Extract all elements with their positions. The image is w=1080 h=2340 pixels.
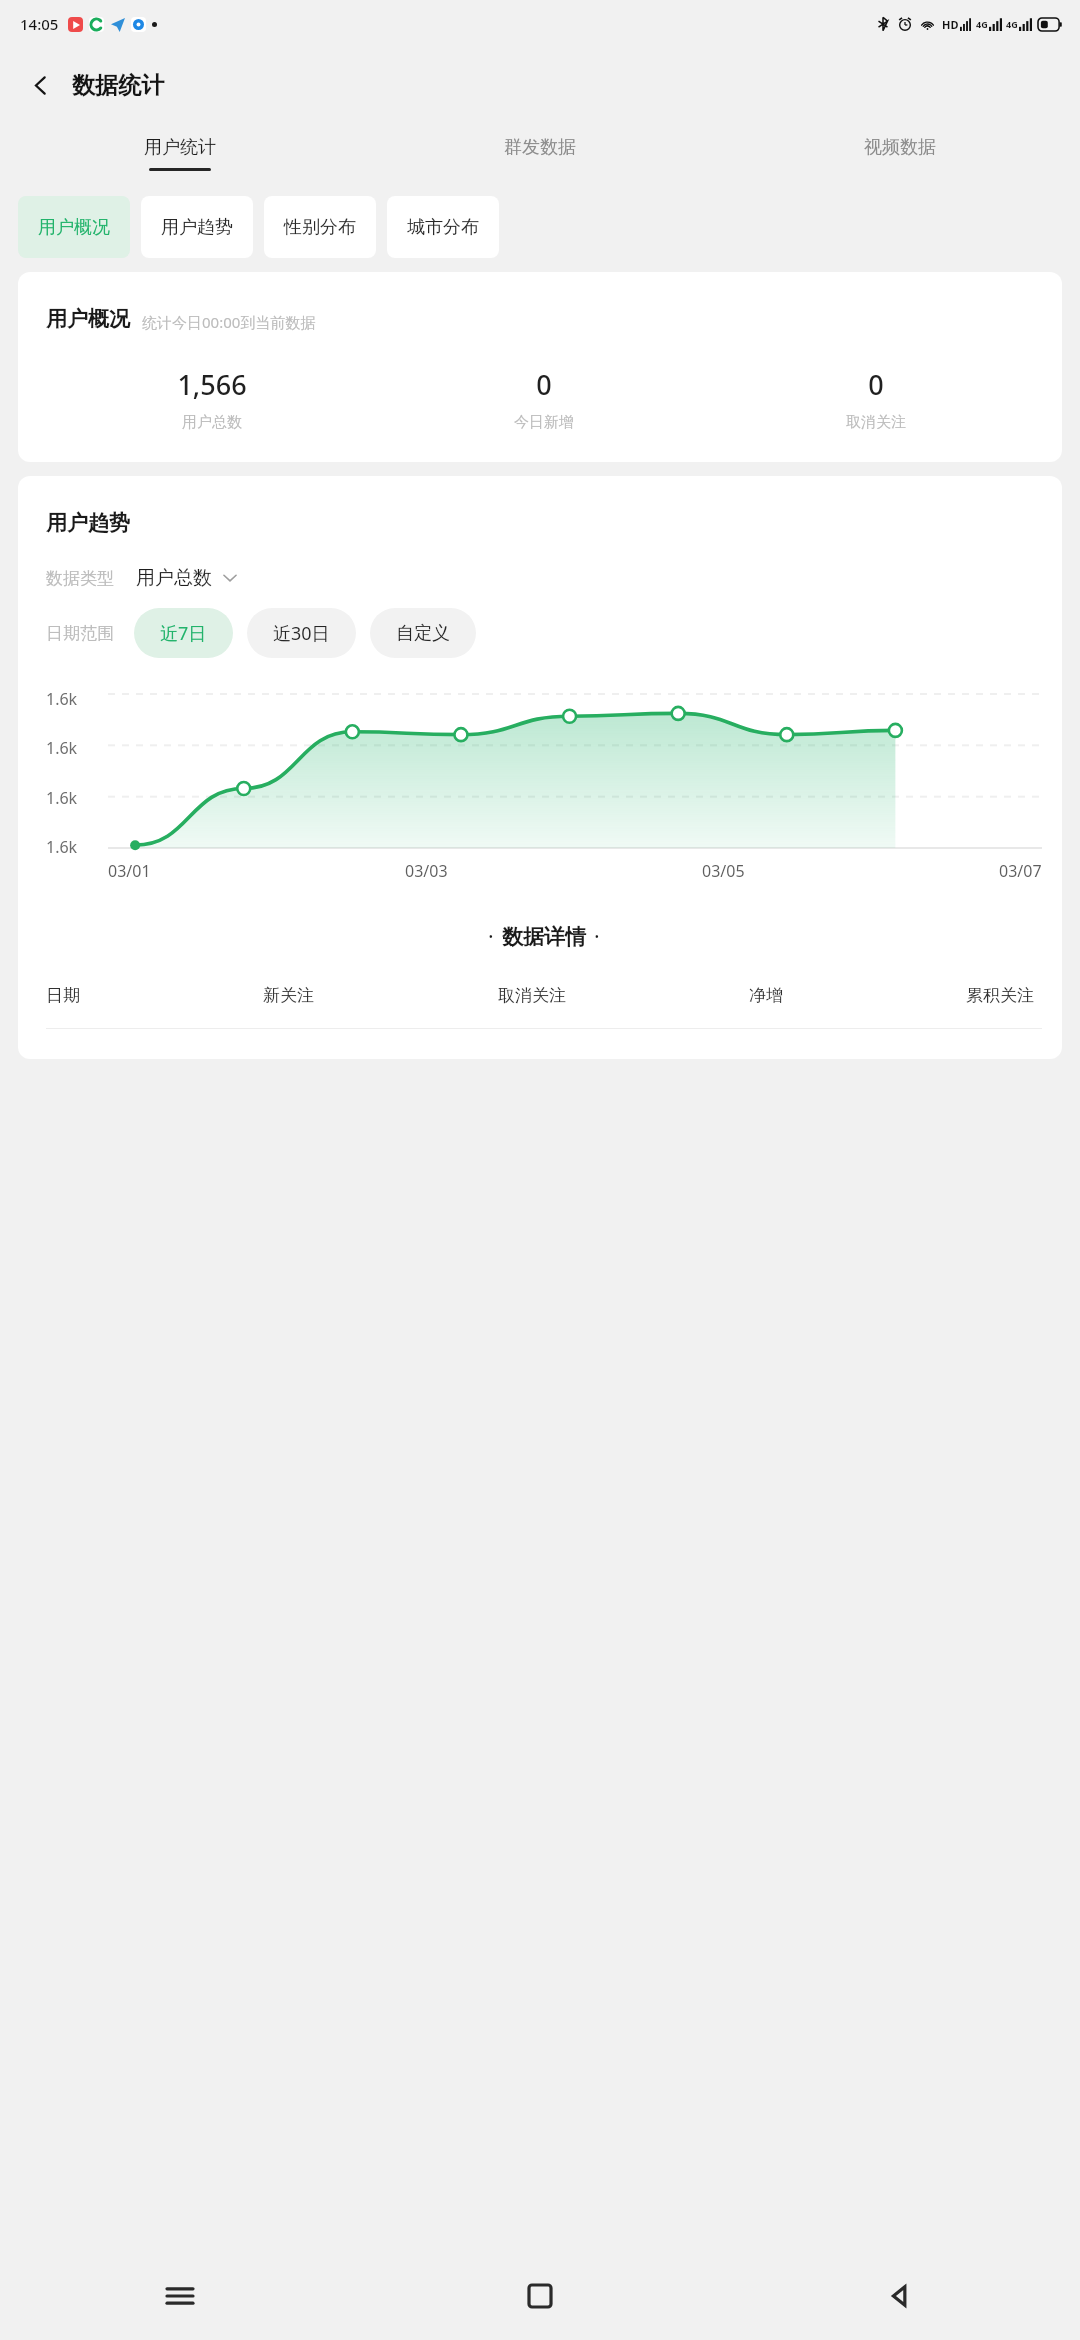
button[interactable]: 近30日 [247,608,356,658]
button[interactable]: 用户统计 [0,122,360,184]
staticText: 日期范围 [46,623,114,644]
staticText: 近30日 [273,621,330,646]
button[interactable]: Home [360,2252,720,2340]
button[interactable]: 用户趋势 [141,196,253,258]
staticText: 日期 [46,985,80,1006]
staticText: 4G [976,18,988,30]
staticText: 1.6k [46,836,78,858]
button[interactable]: 近7日 [134,608,233,658]
staticText: 用户趋势 [161,216,233,239]
staticText: 03/01 [108,860,151,882]
staticText: 累积关注 [966,985,1034,1006]
button[interactable]: 群发数据 [360,122,720,184]
staticText: HD [942,17,959,32]
button[interactable]: 自定义 [370,608,476,658]
button[interactable]: 用户总数 [136,566,238,590]
staticText: 视频数据 [864,136,936,159]
staticText: · [488,922,494,951]
staticText: 用户统计 [144,136,216,159]
staticText: 近7日 [160,621,207,646]
staticText: 0 [536,366,552,403]
staticText: 数据类型 [46,568,114,589]
staticText: 性别分布 [284,216,356,239]
staticText: 03/05 [702,860,745,882]
staticText: 1,566 [177,366,247,403]
staticText: 03/07 [999,860,1042,882]
staticText: 03/03 [405,860,448,882]
staticText: 净增 [749,985,783,1006]
staticText: · [594,922,600,951]
button[interactable]: 视频数据 [720,122,1080,184]
button[interactable]: Back [720,2252,1080,2340]
staticText: 1.6k [46,737,78,759]
button[interactable]: Back [18,63,62,107]
staticText: 用户概况 [46,306,130,332]
staticText: 用户总数 [136,566,212,590]
staticText: 数据统计 [72,71,164,100]
button[interactable]: 城市分布 [387,196,499,258]
staticText: 新关注 [263,985,314,1006]
staticText: 城市分布 [407,216,479,239]
staticText: 群发数据 [504,136,576,159]
staticText: 取消关注 [498,985,566,1006]
staticText: 用户趋势 [46,510,130,536]
staticText: 用户总数 [182,413,242,432]
staticText: 统计今日00:00到当前数据 [142,312,316,332]
staticText: 4G [1006,18,1018,30]
button[interactable]: 用户概况 [18,196,130,258]
staticText: 14:05 [20,14,59,34]
staticText: 数据详情 [502,924,586,950]
staticText: 0 [868,366,884,403]
staticText: 1.6k [46,688,78,710]
staticText: 自定义 [396,622,450,645]
button[interactable]: 性别分布 [264,196,376,258]
staticText: 今日新增 [514,413,574,432]
staticText: 1.6k [46,787,78,809]
button[interactable]: Recents [0,2252,360,2340]
staticText: 用户概况 [38,216,110,239]
staticText: 取消关注 [846,413,906,432]
